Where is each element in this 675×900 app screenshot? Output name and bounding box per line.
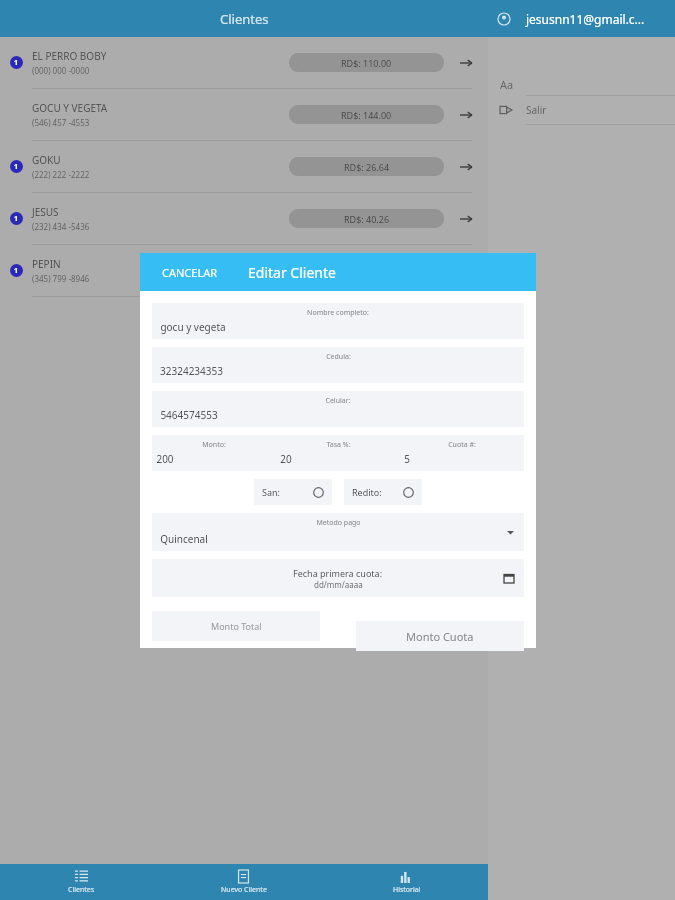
button[interactable]: Fecha primera cuota: <box>152 559 524 597</box>
button[interactable]: Cedula: <box>152 347 524 383</box>
staticText: Celular: <box>325 396 351 406</box>
staticText: GOCU Y VEGETA <box>32 101 108 115</box>
staticText: RD$: 110.00 <box>341 57 392 69</box>
button[interactable]: RD$: 110.00 <box>289 53 444 72</box>
staticText: Fecha primera cuota: <box>293 567 383 579</box>
button[interactable]: Salir <box>488 96 675 124</box>
button[interactable]: Nombre completo: <box>152 303 524 339</box>
staticText: Clientes <box>220 10 269 28</box>
staticText: 1 <box>14 214 19 224</box>
other: Salir <box>500 104 512 116</box>
staticText: Editar Cliente <box>248 263 336 282</box>
button[interactable]: Tasa %: <box>276 435 400 471</box>
button[interactable]: Ver detalle <box>444 108 488 122</box>
staticText: 20 <box>280 452 292 466</box>
button[interactable]: Ver detalle <box>444 160 488 174</box>
staticText: Redito: <box>352 486 382 498</box>
button[interactable]: Nuevo Cliente <box>162 864 325 900</box>
staticText: Metodo pago <box>316 518 361 528</box>
staticText: RD$: 40.26 <box>344 213 390 225</box>
staticText: Clientes <box>68 885 95 895</box>
button[interactable]: Metodo pago <box>152 513 524 551</box>
staticText: CANCELAR <box>162 265 218 280</box>
staticText: Nuevo Cliente <box>221 885 267 895</box>
staticText: 1 <box>14 266 19 276</box>
staticText: Nombre completo: <box>307 308 369 318</box>
staticText: Monto Cuota <box>406 629 474 644</box>
staticText: 1 <box>14 58 19 68</box>
staticText: 5 <box>404 452 410 466</box>
staticText: Historial <box>393 885 421 895</box>
staticText: (000) 000 -0000 <box>32 65 90 76</box>
staticText: gocu y vegeta <box>160 320 226 334</box>
button[interactable]: Historial <box>325 864 488 900</box>
staticText: EL PERRO BOBY <box>32 49 107 63</box>
button[interactable]: 1 <box>0 37 488 88</box>
other: Account <box>498 13 510 25</box>
button[interactable]: Redito: <box>344 479 422 505</box>
button[interactable]: Monto Total <box>152 611 320 641</box>
button[interactable]: Ver detalle <box>444 56 488 70</box>
button[interactable]: 1 <box>0 193 488 244</box>
staticText: Aa <box>500 77 514 92</box>
staticText: Cedula: <box>326 352 351 362</box>
staticText: Monto: <box>202 440 226 450</box>
staticText: (546) 457 -4553 <box>32 117 90 128</box>
button[interactable]: GOCU Y VEGETA <box>0 89 488 140</box>
button[interactable]: Aa <box>488 73 675 95</box>
staticText: (232) 434 -5436 <box>32 221 90 232</box>
button[interactable]: 1 <box>0 245 488 296</box>
button[interactable]: CANCELAR <box>162 265 218 280</box>
staticText: Monto Total <box>211 620 262 632</box>
staticText: dd/mm/aaaa <box>314 579 363 590</box>
other: Expand <box>507 529 514 536</box>
staticText: 5464574553 <box>160 408 218 422</box>
button[interactable]: RD$: 26.64 <box>289 157 444 176</box>
staticText: RD$: 26.64 <box>344 161 390 173</box>
button[interactable]: Ver detalle <box>444 212 488 226</box>
staticText: (222) 222 -2222 <box>32 169 90 180</box>
staticText: JESUS <box>32 205 59 219</box>
staticText: San: <box>262 486 280 498</box>
button[interactable]: Cuota #: <box>400 435 524 471</box>
staticText: jesusnn11@gmail.c... <box>526 11 645 27</box>
button[interactable]: Clientes <box>0 864 162 900</box>
staticText: Salir <box>526 103 547 117</box>
staticText: 200 <box>156 452 174 466</box>
staticText: PEPIN <box>32 257 61 271</box>
staticText: Tasa %: <box>326 440 351 450</box>
other: Pick date <box>504 573 514 583</box>
staticText: GOKU <box>32 153 61 167</box>
button[interactable]: Monto: <box>152 435 276 471</box>
staticText: 1 <box>14 162 19 172</box>
button[interactable]: 1 <box>0 141 488 192</box>
button[interactable]: Celular: <box>152 391 524 427</box>
staticText: (345) 799 -8946 <box>32 273 90 284</box>
staticText: Quincenal <box>160 532 208 546</box>
button[interactable]: San: <box>254 479 332 505</box>
staticText: Cuota #: <box>448 440 476 450</box>
staticText: RD$: 144.00 <box>341 109 392 121</box>
button[interactable]: RD$: 40.26 <box>289 209 444 228</box>
button[interactable]: RD$: 144.00 <box>289 105 444 124</box>
staticText: 32324234353 <box>160 364 223 378</box>
button[interactable]: Monto Cuota <box>356 621 524 651</box>
